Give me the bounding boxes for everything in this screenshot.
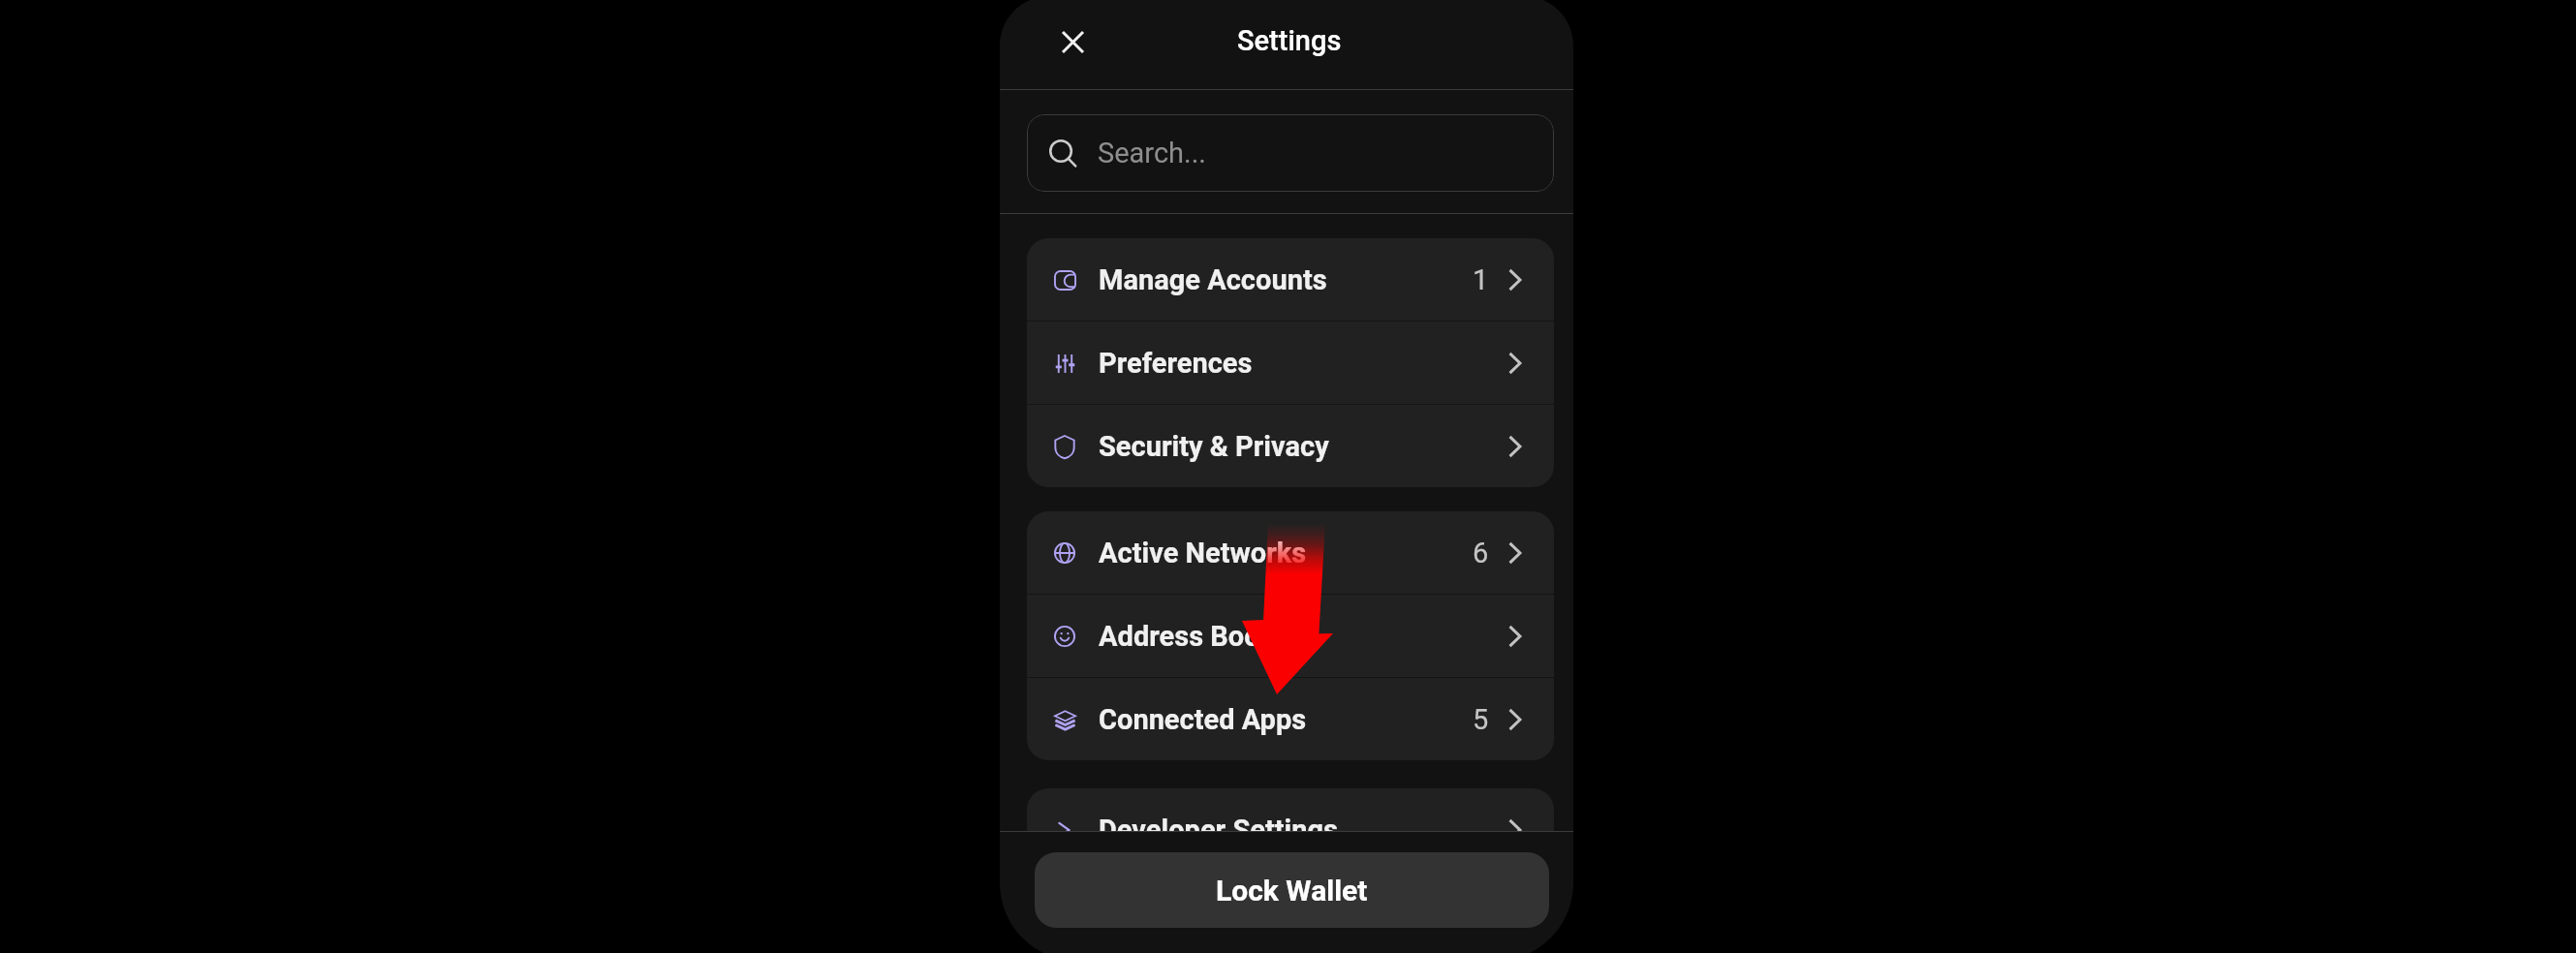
button[interactable]: Security & Privacy bbox=[1027, 405, 1554, 487]
staticText: Settings bbox=[1237, 24, 1342, 57]
staticText: 6 bbox=[1473, 537, 1489, 569]
button[interactable]: Active Networks bbox=[1027, 511, 1554, 594]
staticText: Address Book bbox=[1099, 620, 1276, 653]
staticText: Preferences bbox=[1099, 347, 1253, 380]
button[interactable]: Preferences bbox=[1027, 322, 1554, 404]
button[interactable]: Close bbox=[1051, 20, 1094, 63]
staticText: Security & Privacy bbox=[1099, 430, 1329, 463]
staticText: 5 bbox=[1473, 703, 1489, 736]
button[interactable]: Connected Apps bbox=[1027, 678, 1554, 760]
staticText: Search... bbox=[1098, 137, 1207, 169]
staticText: Active Networks bbox=[1099, 537, 1307, 569]
button[interactable]: Search... bbox=[1027, 114, 1554, 192]
button[interactable]: Manage Accounts bbox=[1027, 238, 1554, 321]
staticText: Developer Settings bbox=[1099, 814, 1338, 831]
button[interactable]: Developer Settings bbox=[1027, 788, 1554, 831]
staticText: Manage Accounts bbox=[1099, 263, 1327, 296]
staticText: Lock Wallet bbox=[1216, 874, 1368, 907]
button[interactable]: Address Book bbox=[1027, 595, 1554, 677]
staticText: Connected Apps bbox=[1099, 703, 1307, 736]
staticText: 1 bbox=[1473, 263, 1489, 296]
button[interactable]: Lock Wallet bbox=[1035, 852, 1549, 928]
